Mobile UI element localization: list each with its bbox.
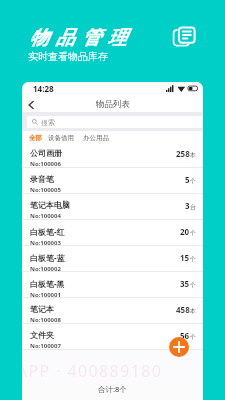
- staticText: 15: [180, 252, 190, 263]
- staticText: 录音笔: [30, 174, 54, 184]
- staticText: 258: [176, 148, 190, 159]
- staticText: 个: [190, 281, 196, 289]
- button[interactable]: 文件夹: [22, 324, 203, 350]
- staticText: 白板笔-红: [30, 226, 65, 237]
- staticText: 14:28: [33, 83, 54, 94]
- staticText: No:100002: [30, 265, 61, 272]
- staticText: 实时查看物品库存: [28, 50, 108, 63]
- button[interactable]: 搜索: [27, 116, 203, 128]
- staticText: 台: [190, 203, 196, 211]
- staticText: 物品管理: [26, 26, 130, 50]
- button[interactable]: 白板笔-黑: [22, 272, 203, 298]
- staticText: No:100006: [30, 160, 61, 168]
- button[interactable]: 笔记本电脑: [22, 194, 203, 220]
- staticText: No:100003: [30, 239, 61, 246]
- button[interactable]: 笔记本: [22, 298, 203, 324]
- button[interactable]: 录音笔: [22, 168, 203, 194]
- staticText: 20: [180, 226, 190, 237]
- staticText: 搜索: [41, 118, 55, 127]
- staticText: 35: [180, 278, 190, 289]
- staticText: 个: [190, 177, 196, 185]
- staticText: 笔记本电脑: [30, 200, 70, 210]
- staticText: No:100005: [30, 186, 61, 194]
- staticText: 白板笔-黑: [30, 278, 65, 289]
- staticText: 公司画册: [30, 148, 62, 158]
- staticText: 笔记本: [30, 304, 54, 314]
- button[interactable]: 全部: [29, 133, 42, 141]
- staticText: 3: [185, 200, 190, 211]
- staticText: 458: [176, 304, 190, 315]
- button[interactable]: 白板笔-红: [22, 220, 203, 246]
- button[interactable]: 返回: [25, 99, 37, 111]
- button[interactable]: 添加: [169, 337, 189, 357]
- staticText: 本: [190, 307, 196, 315]
- staticText: 设备借用: [48, 134, 74, 142]
- staticText: 文件夹: [30, 330, 54, 340]
- staticText: 56: [180, 330, 190, 341]
- button[interactable]: 白板笔-蓝: [22, 246, 203, 272]
- staticText: No:100004: [30, 212, 61, 220]
- staticText: 物品列表: [96, 99, 130, 110]
- staticText: 合计:8个: [98, 384, 127, 394]
- staticText: 全部: [29, 134, 42, 142]
- staticText: No:100008: [30, 316, 61, 324]
- staticText: 个: [190, 229, 196, 237]
- staticText: No:100007: [30, 342, 61, 350]
- staticText: 个: [190, 255, 196, 263]
- staticText: 个: [190, 333, 196, 341]
- button[interactable]: 办公用品: [83, 133, 109, 141]
- button[interactable]: 物品列表: [171, 24, 197, 48]
- button[interactable]: 公司画册: [22, 142, 203, 168]
- staticText: 载下APP · 4008891800.COM: [22, 360, 163, 382]
- button[interactable]: 设备借用: [48, 133, 74, 141]
- staticText: 白板笔-蓝: [30, 252, 65, 263]
- staticText: 5: [185, 174, 190, 185]
- staticText: No:100001: [30, 291, 61, 298]
- staticText: 本: [190, 151, 196, 159]
- staticText: 办公用品: [83, 134, 109, 142]
